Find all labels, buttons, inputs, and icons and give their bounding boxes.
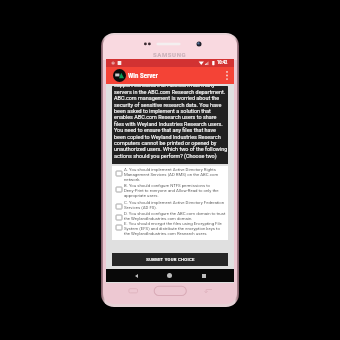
button[interactable]: Home (158, 269, 180, 282)
button[interactable]: A. You should implement Active Directory… (112, 167, 228, 182)
button[interactable]: D. You should configure the ABC.com doma… (112, 211, 228, 221)
staticText: Deny-Print to everyone and Allow-Read to… (124, 188, 219, 193)
staticText: 10:42 (217, 60, 228, 65)
staticText: D. You should configure the ABC.com doma… (124, 211, 226, 216)
staticText: security of sensitive research data. You… (114, 102, 222, 108)
staticText: actions should you perform? (Choose two) (114, 153, 217, 159)
staticText: servers in the ABC.com Research departme… (114, 89, 226, 95)
staticText: computers cannot be printed or opened by (114, 140, 217, 146)
button[interactable]: More options (221, 67, 233, 84)
button[interactable]: SUBMIT YOUR CHOICE (112, 253, 228, 266)
staticText: network. (124, 177, 141, 182)
staticText: the WeylandIndustries.com domain. (124, 216, 193, 221)
button[interactable]: E. You should encrypt the files using En… (112, 221, 228, 236)
button[interactable]: Recent apps (193, 269, 215, 282)
staticText: You need to ensure that any files that h… (114, 127, 216, 133)
staticText: support consultant at ABC.com has many (114, 86, 215, 88)
staticText: the WeylandIndustries.com Research users… (124, 231, 208, 236)
button[interactable]: B. You should configure NTFS permissions… (112, 183, 228, 198)
staticText: files with Weyland Industries Research u… (114, 121, 223, 127)
staticText: Services (AD FS). (124, 205, 157, 210)
staticText: System (EFS) and distribute the encrypti… (124, 226, 220, 231)
staticText: E. You should encrypt the files using En… (124, 221, 222, 226)
button[interactable]: C. You should implement Active Directory… (112, 200, 228, 210)
staticText: been copied to Weyland Industries Resear… (114, 134, 221, 140)
staticText: enables ABC.com Research users to share (114, 114, 217, 120)
staticText: SAMSUNG (153, 51, 187, 58)
button[interactable]: Back (125, 269, 147, 282)
staticText: appropriate users. (124, 193, 159, 198)
staticText: Win Server (128, 72, 158, 80)
staticText: B. You should configure NTFS permissions… (124, 183, 211, 188)
staticText: been asked to implement a solution that (114, 108, 211, 114)
staticText: SUBMIT YOUR CHOICE (146, 257, 195, 262)
staticText: C. You should implement Active Directory… (124, 200, 225, 205)
staticText: A. You should implement Active Directory… (124, 167, 216, 172)
staticText: Management Services (AD RMS) on the ABC.… (124, 172, 219, 177)
staticText: ABC.com management is worried about the (114, 95, 220, 101)
staticText: unauthorized users. Which two of the fol… (114, 146, 228, 152)
